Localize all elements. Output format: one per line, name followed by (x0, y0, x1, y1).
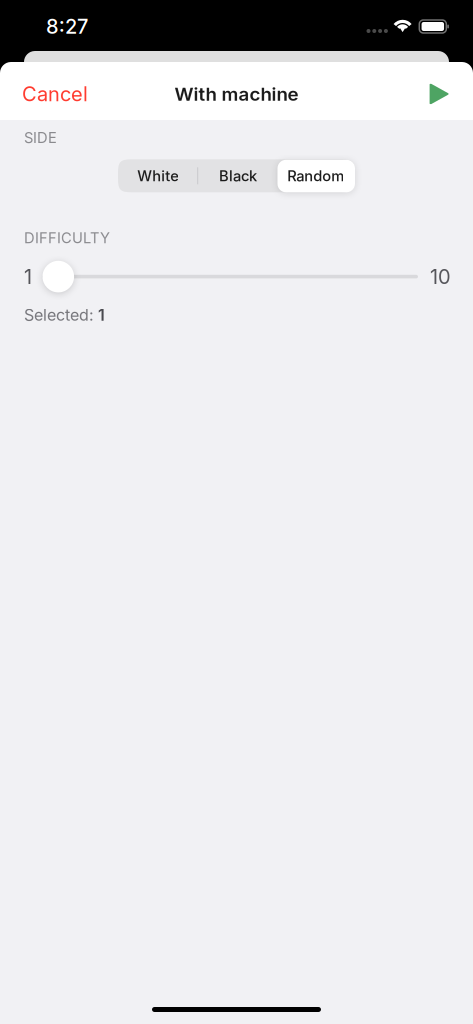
staticText: Black (219, 167, 257, 184)
staticText: Random (287, 167, 344, 184)
staticText: Cancel (22, 82, 88, 106)
button[interactable]: White (119, 161, 197, 191)
staticText: 10 (430, 265, 451, 288)
button[interactable]: Black (198, 161, 278, 191)
staticText: 1 (24, 265, 32, 288)
staticText: SIDE (24, 129, 57, 146)
staticText: 1 (98, 306, 105, 324)
button[interactable]: Random (278, 161, 353, 191)
button[interactable]: Cancel (16, 69, 94, 113)
button[interactable]: Start game (423, 71, 455, 111)
staticText: Selected: (24, 306, 94, 324)
staticText: With machine (174, 83, 298, 105)
staticText: White (137, 167, 179, 184)
staticText: DIFFICULTY (24, 229, 110, 247)
staticText: 8:27 (46, 15, 88, 38)
